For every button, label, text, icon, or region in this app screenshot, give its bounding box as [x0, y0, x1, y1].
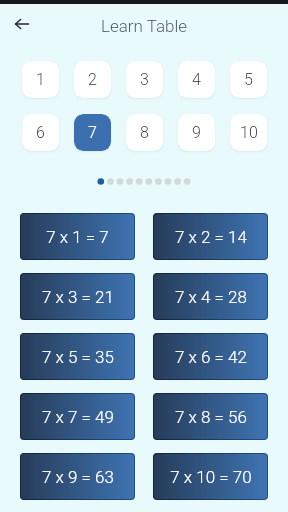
button[interactable]: 6 [22, 114, 59, 151]
button[interactable]: 3 [126, 61, 163, 98]
staticText: 7 x 2 = 14 [175, 227, 247, 247]
staticText: 7 x 10 = 70 [170, 467, 252, 487]
staticText: 8 [140, 123, 149, 142]
button[interactable]: 7 x 6 = 42 [153, 333, 268, 380]
staticText: 9 [192, 123, 201, 142]
staticText: 3 [140, 70, 149, 89]
button[interactable]: 7 x 4 = 28 [153, 273, 268, 320]
staticText: 7 x 6 = 42 [175, 347, 247, 367]
button[interactable]: 1 [22, 61, 59, 98]
staticText: 4 [192, 70, 201, 89]
button[interactable]: 2 [74, 61, 111, 98]
staticText: 2 [88, 70, 97, 89]
staticText: 1 [36, 70, 45, 89]
button[interactable]: 7 x 7 = 49 [20, 393, 135, 440]
button[interactable]: 4 [178, 61, 215, 98]
button[interactable]: 7 x 8 = 56 [153, 393, 268, 440]
button[interactable]: 7 x 2 = 14 [153, 213, 268, 260]
button[interactable]: 7 x 1 = 7 [20, 213, 135, 260]
button[interactable]: 7 x 9 = 63 [20, 453, 135, 500]
button[interactable]: 7 [74, 114, 111, 151]
button[interactable]: 7 x 5 = 35 [20, 333, 135, 380]
button[interactable]: 10 [230, 114, 267, 151]
button[interactable]: 7 x 10 = 70 [153, 453, 268, 500]
staticText: 7 x 8 = 56 [175, 407, 247, 427]
staticText: 7 x 5 = 35 [42, 347, 114, 367]
staticText: 7 x 4 = 28 [175, 287, 247, 307]
staticText: 6 [36, 123, 45, 142]
staticText: 5 [244, 70, 253, 89]
staticText: 7 x 9 = 63 [42, 467, 114, 487]
staticText: 10 [240, 123, 258, 142]
button[interactable]: Back [8, 10, 36, 38]
button[interactable]: 9 [178, 114, 215, 151]
button[interactable]: 5 [230, 61, 267, 98]
staticText: 7 x 1 = 7 [46, 227, 109, 247]
staticText: 7 x 7 = 49 [42, 407, 114, 427]
staticText: 7 x 3 = 21 [42, 287, 114, 307]
button[interactable]: 8 [126, 114, 163, 151]
button[interactable]: 7 x 3 = 21 [20, 273, 135, 320]
staticText: 7 [88, 123, 97, 142]
staticText: Learn Table [101, 16, 188, 36]
